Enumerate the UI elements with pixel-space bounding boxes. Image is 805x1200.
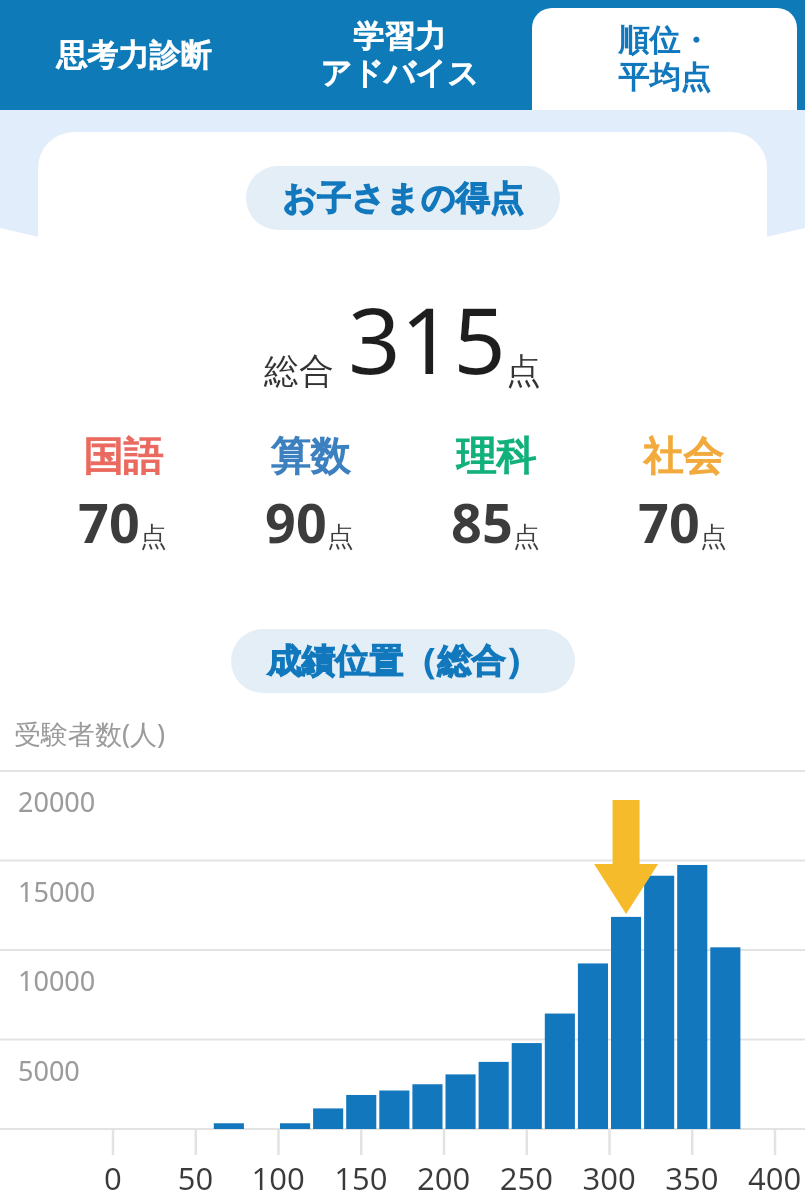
staticText: 点 [140, 520, 167, 554]
button[interactable]: 思考力診断 [0, 0, 266, 110]
staticText: 総合 [264, 349, 334, 393]
staticText: 成績位置（総合） [267, 640, 539, 683]
staticText: 70 [638, 485, 700, 559]
other: 成績位置のヒストグラム [0, 711, 805, 1191]
staticText: 点 [513, 520, 540, 554]
button[interactable]: 順位・ 平均点 [532, 8, 797, 110]
button[interactable]: 学習力 アドバイス [266, 0, 532, 110]
staticText: 国語 [83, 431, 163, 481]
staticText: 理科 [456, 431, 536, 481]
staticText: 学習力 アドバイス [320, 17, 479, 94]
staticText: 点 [327, 520, 354, 554]
staticText: 90 [265, 485, 327, 559]
staticText: 順位・ 平均点 [618, 21, 711, 98]
staticText: 思考力診断 [56, 36, 211, 75]
staticText: 70 [78, 485, 140, 559]
staticText: 315 [348, 276, 506, 401]
staticText: 算数 [270, 431, 350, 481]
staticText: 点 [506, 349, 541, 393]
staticText: お子さまの得点 [282, 177, 524, 220]
staticText: 社会 [643, 431, 723, 481]
staticText: 85 [451, 485, 513, 559]
staticText: 点 [700, 520, 727, 554]
